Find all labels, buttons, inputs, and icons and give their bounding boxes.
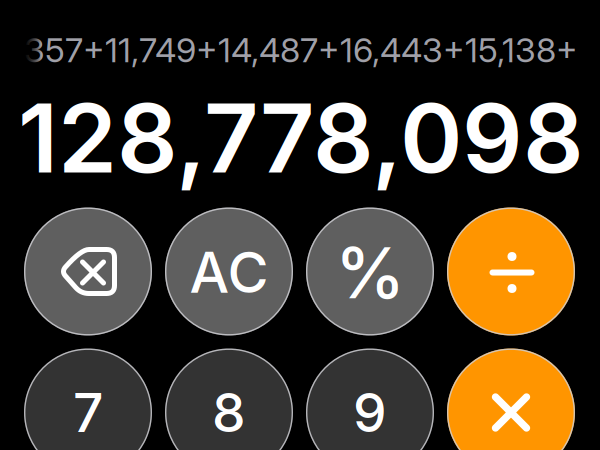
staticText: AC [189,239,268,306]
staticText: 357+11,749+14,487+16,443+15,138+ [24,29,578,70]
button[interactable]: Delete [24,207,152,335]
button[interactable]: Multiply [447,348,575,450]
button[interactable]: 9 [306,348,434,450]
staticText: 7 [73,380,103,445]
staticText: % [335,230,405,315]
button[interactable]: Divide [447,207,575,335]
button[interactable]: AC [165,207,293,335]
button[interactable]: % [306,207,434,335]
staticText: 128,778,098 [18,81,584,195]
staticText: 9 [353,380,387,445]
button[interactable]: 8 [165,348,293,450]
button[interactable]: 7 [24,348,152,450]
staticText: 8 [212,380,246,445]
